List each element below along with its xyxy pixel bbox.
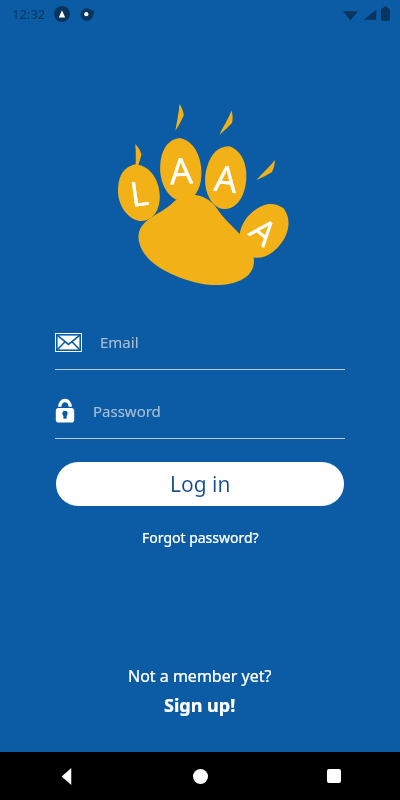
button[interactable]: Log in [56,462,344,506]
button[interactable]: Back [0,752,134,800]
staticText: 12:32 [12,5,46,23]
button[interactable]: Recent apps [267,752,400,800]
button[interactable]: Email [55,326,345,370]
button[interactable]: Sign up! [154,691,246,720]
button[interactable]: Forgot password? [132,524,269,551]
staticText: A [168,145,194,196]
staticText: A [241,206,287,256]
staticText: Forgot password? [142,528,259,547]
staticText: L [127,169,151,217]
button[interactable]: Home [134,752,267,800]
button[interactable]: Password [55,395,345,439]
staticText: Sign up! [164,693,236,718]
staticText: A [211,153,240,204]
staticText: Log in [170,470,231,499]
staticText: Not a member yet? [128,665,272,687]
staticText: Email [100,332,139,352]
staticText: Password [93,401,161,421]
